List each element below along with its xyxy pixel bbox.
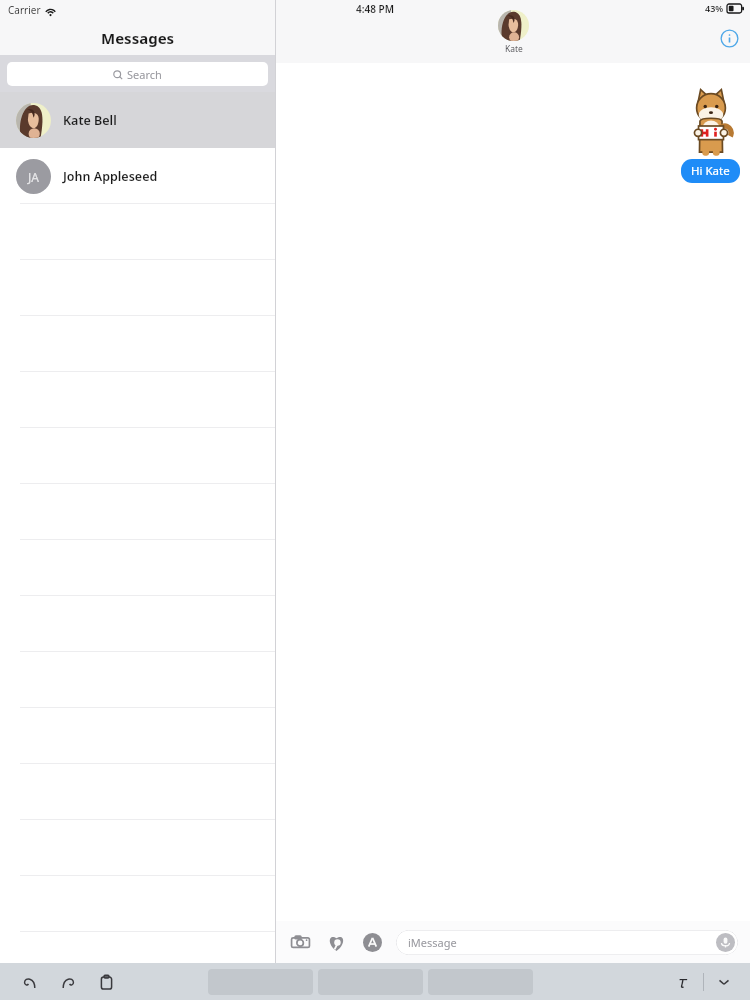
button[interactable]: Digital Touch — [324, 930, 348, 954]
button[interactable]: Kate — [498, 10, 529, 55]
staticText: 4:48 PM — [356, 2, 394, 16]
staticText: Search — [127, 67, 162, 82]
staticText: 43% — [705, 2, 724, 14]
staticText: JA — [28, 169, 39, 185]
button[interactable]: Camera — [288, 930, 312, 954]
staticText: Kate Bell — [63, 112, 117, 129]
button[interactable]: Redo — [56, 970, 80, 994]
button[interactable]: Paste — [94, 970, 118, 994]
button[interactable]: JA — [0, 148, 275, 204]
button[interactable]: App Store — [360, 930, 384, 954]
button[interactable]: Undo — [18, 970, 42, 994]
staticText: John Appleseed — [63, 168, 158, 185]
button[interactable]: Hide keyboard — [712, 970, 736, 994]
button[interactable]: Hi Kate — [681, 159, 740, 183]
staticText: Kate — [505, 43, 523, 55]
button[interactable]: Handwriting — [671, 970, 695, 994]
staticText: Carrier — [8, 3, 41, 17]
button[interactable]: iMessage text field — [396, 930, 738, 955]
staticText: iMessage — [408, 935, 457, 950]
button[interactable]: Kate Bell — [0, 92, 275, 148]
button[interactable]: Search — [7, 62, 268, 86]
button[interactable]: Dictate — [716, 933, 735, 952]
button[interactable]: Details — [718, 27, 740, 49]
staticText: Messages — [101, 28, 175, 48]
staticText: Hi Kate — [691, 163, 730, 179]
staticText: 𝜏 — [679, 974, 688, 991]
button[interactable] — [0, 932, 275, 988]
